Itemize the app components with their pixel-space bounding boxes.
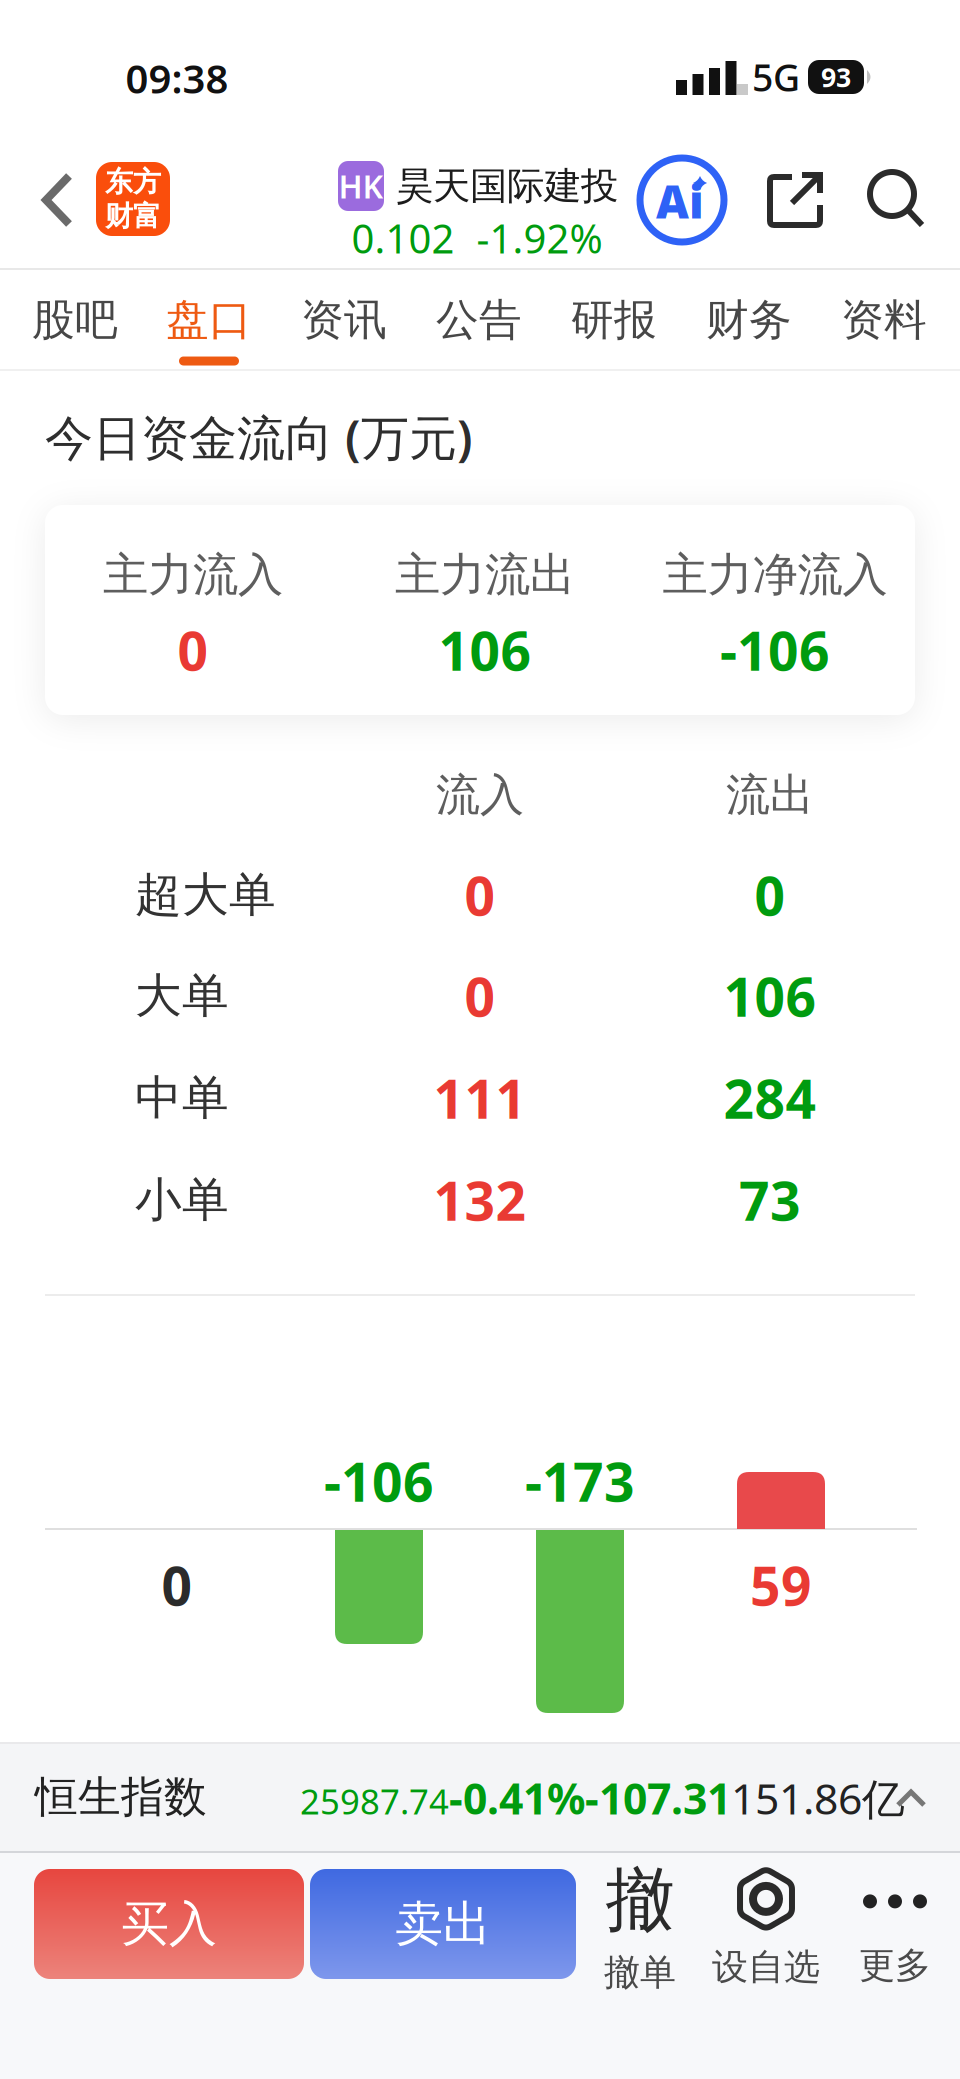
- staticText: 超大单: [135, 866, 276, 924]
- staticText: -106: [324, 1446, 434, 1516]
- staticText: 151.86亿: [731, 1770, 905, 1826]
- staticText: 财务: [706, 294, 792, 346]
- button[interactable]: 财务: [706, 294, 792, 346]
- button[interactable]: 股吧: [32, 294, 118, 346]
- staticText: 大单: [135, 967, 229, 1025]
- button[interactable]: 展开: [898, 1791, 924, 1807]
- staticText: 0: [754, 860, 785, 930]
- staticText: 09:38: [125, 51, 228, 104]
- staticText: 财富: [105, 199, 161, 233]
- button[interactable]: 卖出: [310, 1869, 576, 1979]
- staticText: Ai: [656, 171, 704, 231]
- staticText: 0: [177, 615, 208, 685]
- staticText: 小单: [135, 1171, 229, 1229]
- button[interactable]: 设自选: [712, 1867, 820, 1989]
- staticText: -107.31: [585, 1770, 731, 1826]
- staticText: 设自选: [712, 1945, 820, 1989]
- button[interactable]: Back: [43, 174, 73, 226]
- staticText: 73: [739, 1165, 801, 1235]
- staticText: 93: [821, 59, 851, 95]
- staticText: 主力净流入: [662, 547, 887, 603]
- staticText: -106: [720, 615, 830, 685]
- staticText: 资讯: [301, 294, 387, 346]
- staticText: 恒生指数: [35, 1771, 207, 1823]
- button[interactable]: 买入: [34, 1869, 304, 1979]
- staticText: 0: [464, 961, 495, 1031]
- staticText: 106: [723, 961, 816, 1031]
- button[interactable]: 盘口: [166, 294, 252, 346]
- staticText: 132: [433, 1165, 526, 1235]
- button[interactable]: 分享: [764, 169, 826, 231]
- staticText: 111: [433, 1063, 526, 1133]
- staticText: HK: [338, 165, 383, 207]
- staticText: 0.102: [351, 211, 454, 264]
- staticText: -173: [525, 1446, 635, 1516]
- button[interactable]: 资讯: [301, 294, 387, 346]
- button[interactable]: Ai 助手: [640, 158, 724, 242]
- staticText: 0: [464, 860, 495, 930]
- staticText: 盘口: [166, 294, 252, 346]
- button[interactable]: 东方财富: [96, 162, 170, 236]
- staticText: 流入: [436, 768, 524, 822]
- button[interactable]: 公告: [436, 294, 522, 346]
- button[interactable]: 恒生指数: [35, 1771, 295, 1823]
- staticText: 流出: [726, 768, 814, 822]
- staticText: 更多: [859, 1943, 931, 1988]
- staticText: 中单: [135, 1069, 229, 1127]
- staticText: 东方: [105, 165, 161, 199]
- button[interactable]: 搜索: [865, 169, 927, 231]
- staticText: -1.92%: [476, 211, 602, 264]
- staticText: 0: [161, 1550, 192, 1620]
- staticText: 买入: [121, 1894, 217, 1953]
- staticText: 主力流入: [103, 547, 283, 603]
- staticText: 284: [723, 1063, 816, 1133]
- staticText: 股吧: [32, 294, 118, 346]
- staticText: 撤单: [604, 1950, 676, 1995]
- button[interactable]: 撤: [604, 1857, 676, 1995]
- button[interactable]: 更多: [859, 1894, 931, 1988]
- staticText: 5G: [752, 52, 800, 102]
- button[interactable]: 资料: [841, 294, 927, 346]
- staticText: 106: [438, 615, 531, 685]
- staticText: 25987.74: [300, 1778, 449, 1824]
- staticText: 资料: [841, 294, 927, 346]
- staticText: -0.41%: [449, 1770, 585, 1826]
- staticText: 卖出: [395, 1894, 491, 1953]
- staticText: 59: [750, 1550, 812, 1620]
- staticText: 撤: [605, 1857, 674, 1942]
- staticText: 研报: [571, 294, 657, 346]
- staticText: 昊天国际建投: [396, 163, 618, 209]
- staticText: 今日资金流向 (万元): [45, 405, 473, 469]
- staticText: 公告: [436, 294, 522, 346]
- staticText: 主力流出: [395, 547, 575, 603]
- button[interactable]: 研报: [571, 294, 657, 346]
